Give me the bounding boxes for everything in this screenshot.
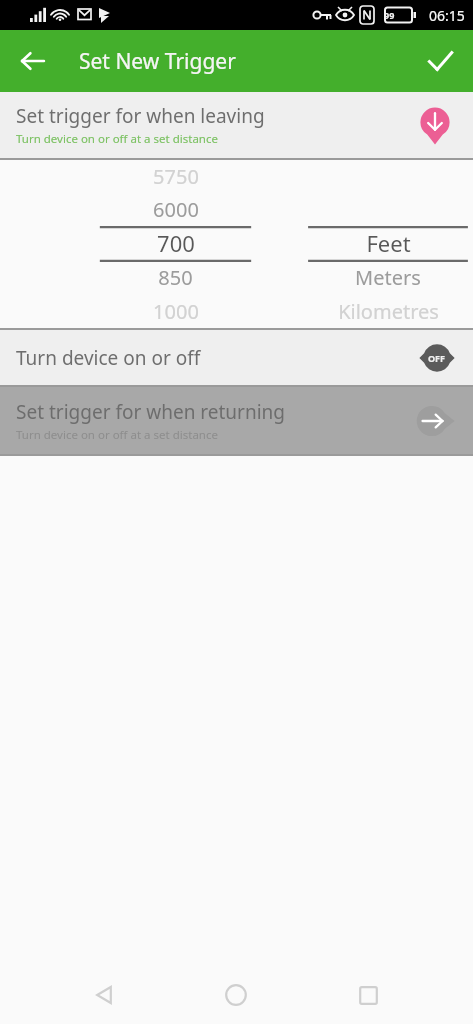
button[interactable]: 1000: [95, 294, 256, 328]
staticText: 06:15: [429, 6, 465, 25]
staticText: Turn device on or off at a set distance: [16, 131, 218, 147]
button[interactable]: 850: [95, 260, 256, 294]
button[interactable]: Home: [209, 968, 263, 1022]
button[interactable]: 5750: [95, 160, 256, 193]
button[interactable]: Set trigger for when returning: [0, 387, 473, 454]
button[interactable]: Save: [415, 36, 465, 86]
staticText: Set trigger for when leaving: [16, 103, 265, 129]
button[interactable]: Back: [10, 38, 56, 84]
button[interactable]: Feet: [303, 226, 473, 260]
button[interactable]: Recent apps: [341, 968, 395, 1022]
staticText: Meters: [355, 264, 421, 291]
staticText: 99: [384, 9, 395, 21]
staticText: 5750: [153, 163, 199, 190]
staticText: 1000: [153, 298, 199, 325]
staticText: OFF: [428, 352, 446, 364]
staticText: 700: [157, 228, 195, 258]
staticText: Set trigger for when returning: [16, 399, 286, 425]
button[interactable]: 6000: [95, 193, 256, 226]
staticText: Turn device on or off: [16, 345, 419, 371]
button[interactable]: Kilometres: [303, 294, 473, 328]
button[interactable]: Turn device on or off: [0, 330, 473, 385]
other: Set trigger for when returning: [413, 400, 455, 442]
button[interactable]: Meters: [303, 260, 473, 294]
staticText: Turn device on or off at a set distance: [16, 427, 218, 443]
staticText: Set New Trigger: [79, 47, 236, 76]
staticText: 6000: [153, 196, 199, 223]
staticText: 850: [158, 264, 193, 291]
button[interactable]: Set trigger for when leaving: [0, 92, 473, 158]
button[interactable]: Back: [77, 968, 131, 1022]
button[interactable]: 700: [95, 226, 256, 260]
other: Turn device on or off: [419, 340, 455, 376]
staticText: Feet: [366, 228, 411, 258]
staticText: Kilometres: [338, 298, 439, 325]
